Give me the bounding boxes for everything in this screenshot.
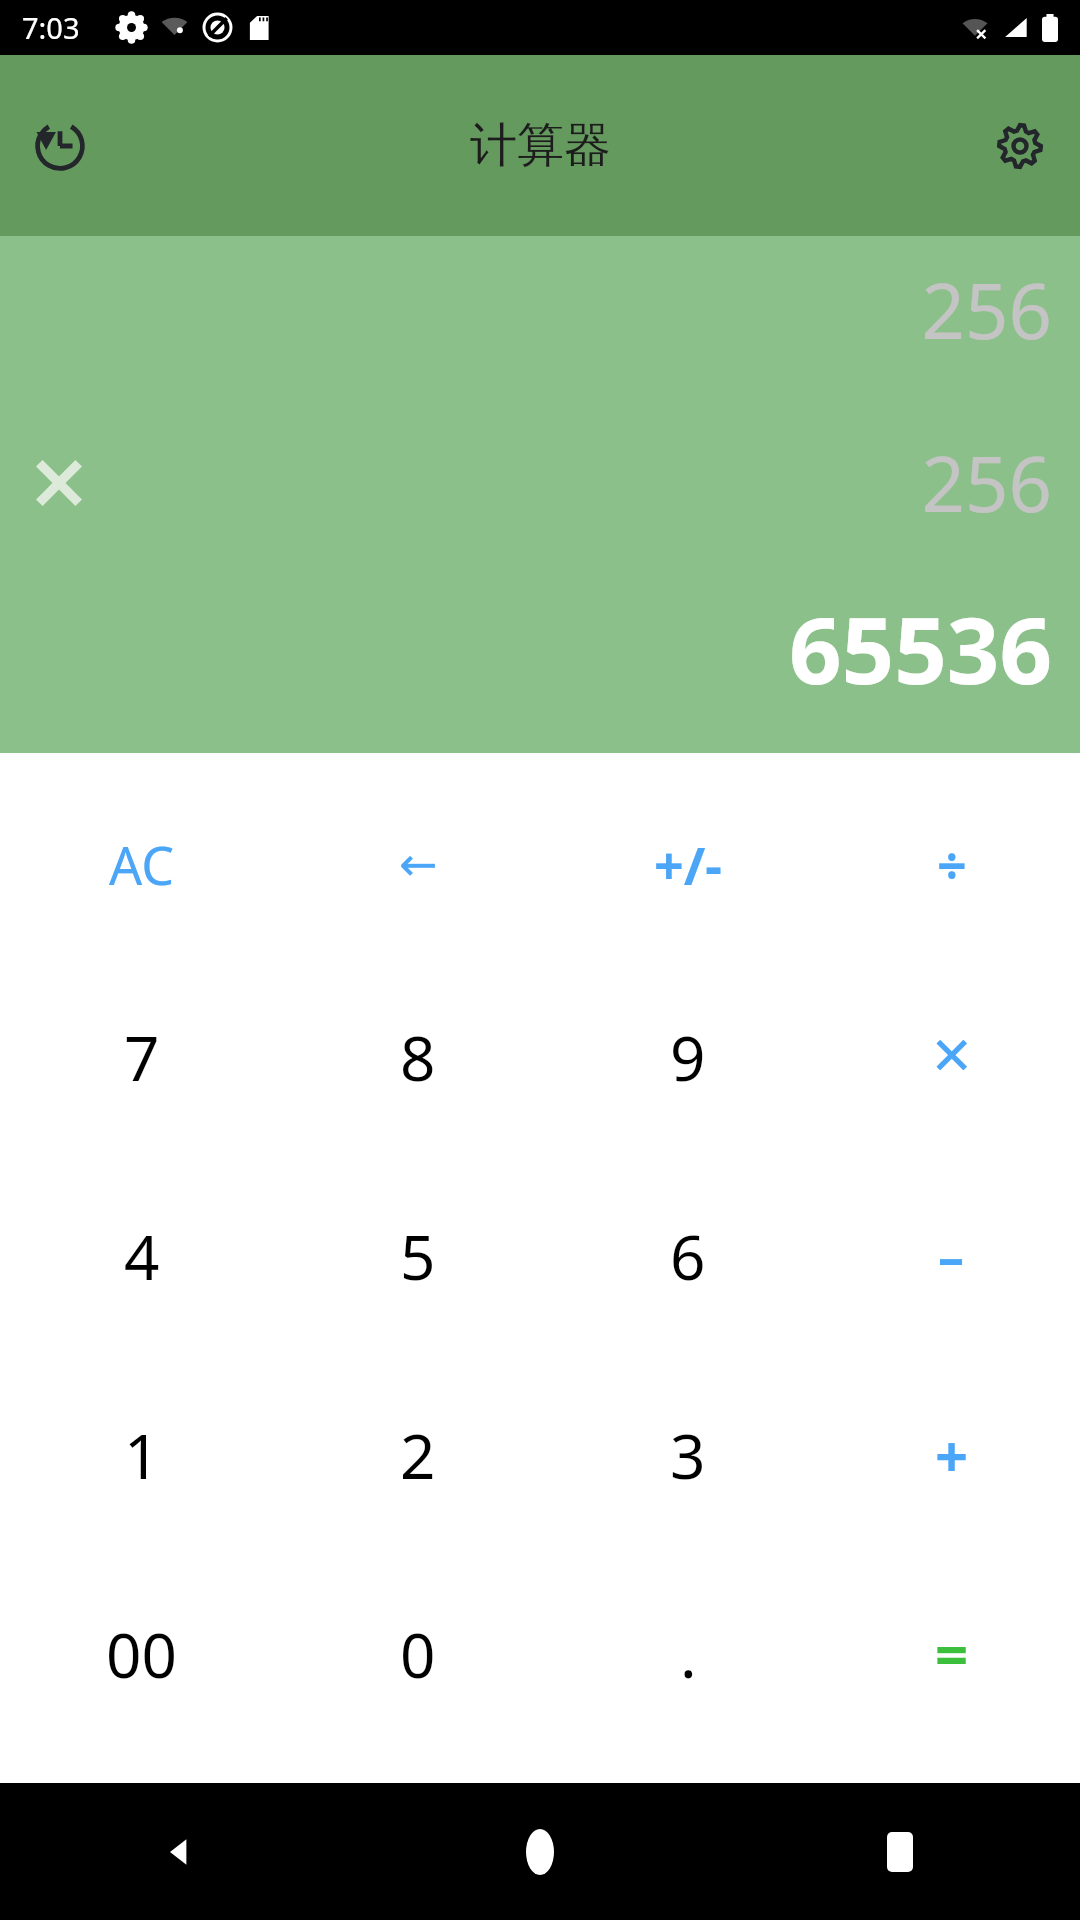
button[interactable]: +	[823, 1355, 1080, 1554]
staticText: AC	[109, 829, 175, 900]
button[interactable]: ✕	[823, 957, 1080, 1156]
button[interactable]: 2	[283, 1355, 553, 1554]
button[interactable]: 0	[283, 1554, 553, 1753]
button[interactable]: 5	[283, 1156, 553, 1355]
button[interactable]: Settings	[982, 108, 1058, 184]
staticText: 4	[124, 1214, 160, 1298]
button[interactable]: ←	[283, 771, 553, 957]
staticText: 2	[400, 1413, 436, 1497]
staticText: 6	[670, 1214, 706, 1298]
staticText: –	[938, 1220, 965, 1291]
staticText: 65536	[788, 586, 1052, 711]
button[interactable]: 7	[0, 957, 283, 1156]
staticText: 计算器	[470, 116, 611, 175]
staticText: 256	[921, 258, 1052, 362]
staticText: +	[935, 1415, 969, 1494]
staticText: ✕	[930, 1026, 974, 1087]
button[interactable]: AC	[0, 771, 283, 957]
button[interactable]: Home	[360, 1783, 720, 1920]
staticText: 0	[400, 1612, 436, 1696]
button[interactable]: History	[22, 108, 98, 184]
button[interactable]: +/-	[553, 771, 823, 957]
staticText: 3	[670, 1413, 706, 1497]
staticText: ÷	[937, 829, 967, 900]
button[interactable]: .	[553, 1554, 823, 1753]
staticText: ←	[399, 837, 438, 891]
button[interactable]: 00	[0, 1554, 283, 1753]
button[interactable]: =	[823, 1554, 1080, 1753]
staticText: =	[935, 1614, 969, 1693]
button[interactable]: 1	[0, 1355, 283, 1554]
staticText: 00	[106, 1612, 177, 1696]
staticText: 256	[921, 431, 1052, 535]
button[interactable]: ÷	[823, 771, 1080, 957]
button[interactable]: Recents	[720, 1783, 1080, 1920]
staticText: 8	[400, 1015, 436, 1099]
staticText: +/-	[654, 829, 722, 900]
staticText: .	[680, 1612, 697, 1696]
button[interactable]: –	[823, 1156, 1080, 1355]
staticText: 5	[400, 1214, 436, 1298]
button[interactable]: 9	[553, 957, 823, 1156]
button[interactable]: 4	[0, 1156, 283, 1355]
staticText: 7:03	[22, 8, 80, 47]
staticText: 7	[124, 1015, 160, 1099]
button[interactable]: 6	[553, 1156, 823, 1355]
button[interactable]: 3	[553, 1355, 823, 1554]
staticText: 9	[670, 1015, 706, 1099]
button[interactable]: 8	[283, 957, 553, 1156]
button[interactable]: Back	[0, 1783, 360, 1920]
staticText: 1	[124, 1413, 160, 1497]
